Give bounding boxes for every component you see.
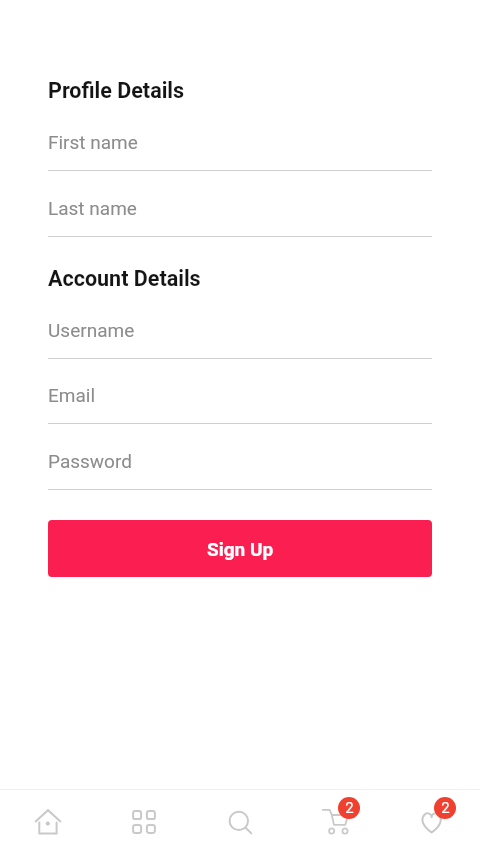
button[interactable]: Search [192,790,288,854]
staticText: Last name [48,197,137,219]
button[interactable]: Categories [96,790,192,854]
button[interactable]: Last name [48,197,432,237]
staticText: Username [48,319,135,341]
staticText: Email [48,384,96,406]
staticText: Sign Up [207,538,274,560]
button[interactable]: First name [48,131,432,171]
button[interactable]: Favorites [384,790,480,854]
button[interactable]: Cart [288,790,384,854]
button[interactable]: Password [48,450,432,490]
staticText: First name [48,131,138,153]
button[interactable]: Sign Up [48,520,432,577]
staticText: 2 [441,799,450,817]
staticText: Password [48,450,132,472]
button[interactable]: Username [48,319,432,359]
staticText: 2 [345,799,354,817]
button[interactable]: Home [0,790,96,854]
staticText: Account Details [48,266,201,291]
button[interactable]: Email [48,384,432,424]
staticText: Profile Details [48,78,185,103]
